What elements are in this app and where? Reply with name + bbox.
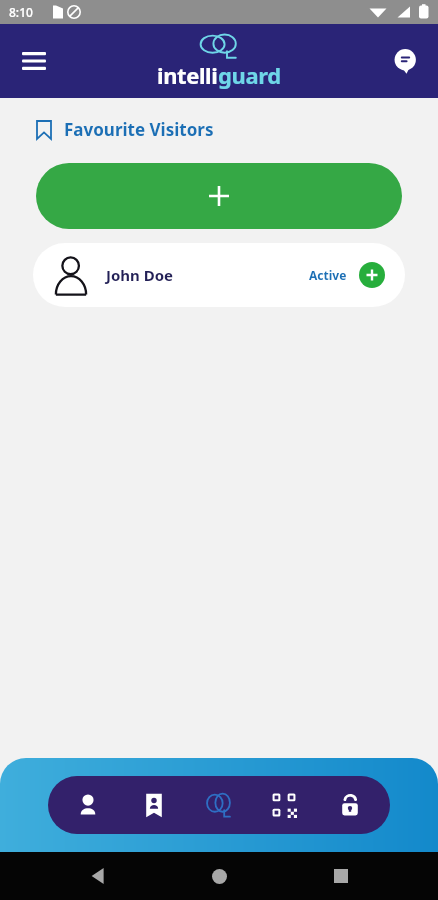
- button[interactable]: Passes: [129, 776, 179, 834]
- staticText: 8:10: [9, 4, 33, 20]
- staticText: John Doe: [106, 265, 174, 285]
- button[interactable]: Favourite Visitors: [36, 118, 214, 141]
- button[interactable]: John Doe: [33, 243, 405, 307]
- staticText: Active: [309, 267, 347, 283]
- button[interactable]: Messages: [386, 41, 426, 81]
- button[interactable]: Chat: [194, 776, 244, 834]
- button[interactable]: Unlock: [325, 776, 375, 834]
- button[interactable]: Visitors: [63, 776, 113, 834]
- staticText: intelli: [157, 60, 218, 90]
- button[interactable]: Back: [74, 852, 122, 900]
- staticText: Favourite Visitors: [64, 118, 214, 141]
- button[interactable]: Add favourite visitor: [36, 163, 402, 229]
- button[interactable]: Scan QR code: [259, 776, 309, 834]
- button[interactable]: Open navigation menu: [12, 39, 56, 83]
- staticText: guard: [218, 60, 281, 90]
- button[interactable]: Recent apps: [317, 852, 365, 900]
- button[interactable]: Add John Doe: [359, 262, 385, 288]
- button[interactable]: Home: [195, 852, 243, 900]
